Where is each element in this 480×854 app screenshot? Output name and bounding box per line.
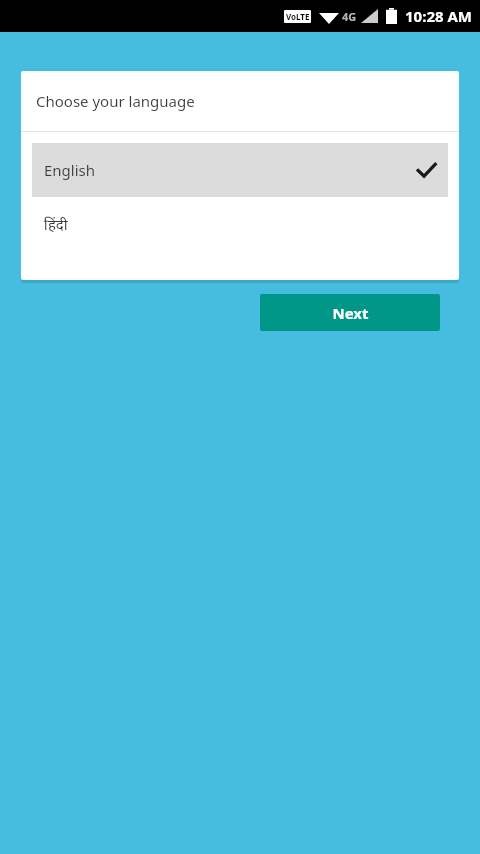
- button[interactable]: English: [32, 143, 448, 197]
- staticText: हिंदी: [44, 214, 68, 234]
- staticText: Next: [332, 303, 369, 323]
- staticText: English: [44, 160, 96, 180]
- staticText: VoLTE: [286, 11, 310, 22]
- staticText: 4G: [342, 9, 357, 24]
- button[interactable]: हिंदी: [32, 197, 448, 251]
- staticText: Choose your language: [36, 91, 195, 111]
- other: Selected: [417, 161, 436, 180]
- button[interactable]: Next: [260, 294, 440, 331]
- staticText: 10:28 AM: [405, 6, 472, 26]
